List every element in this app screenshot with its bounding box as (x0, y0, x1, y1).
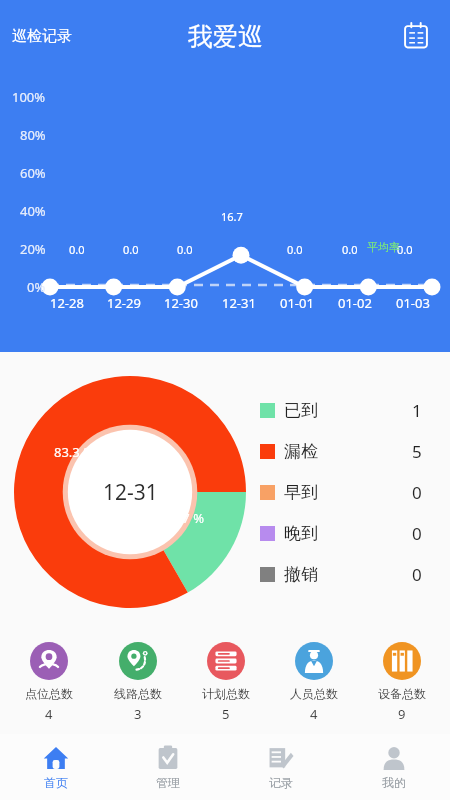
button[interactable]: 首页 (0, 734, 112, 800)
staticText: 记录 (269, 775, 293, 790)
staticText: 设备总数 (378, 686, 426, 701)
staticText: 12-30 (164, 294, 198, 312)
staticText: 0.0 (123, 242, 139, 257)
staticText: 01-01 (280, 294, 314, 312)
staticText: 0 (412, 563, 422, 586)
button[interactable]: 管理 (112, 734, 224, 800)
staticText: 83.3 % (54, 443, 94, 461)
staticText: 已到 (284, 400, 318, 421)
staticText: 12-29 (107, 294, 141, 312)
staticText: 0.0 (69, 242, 85, 257)
staticText: 5 (412, 440, 422, 463)
staticText: 01-03 (396, 294, 430, 312)
button[interactable]: 计划总数 (182, 638, 270, 727)
staticText: 40% (20, 202, 46, 220)
staticText: 60% (20, 164, 46, 182)
staticText: 撤销 (284, 564, 318, 585)
staticText: 0 (412, 481, 422, 504)
staticText: 3 (134, 705, 142, 723)
staticText: 12-31 (103, 478, 158, 507)
staticText: 晚到 (284, 523, 318, 544)
button[interactable]: 我的 (337, 734, 450, 800)
staticText: 我爱巡 (188, 21, 263, 52)
staticText: 漏检 (284, 441, 318, 462)
staticText: 点位总数 (25, 686, 73, 701)
button[interactable]: 线路总数 (93, 638, 182, 727)
staticText: 0% (27, 278, 46, 296)
button[interactable]: 漏检 (260, 440, 422, 463)
staticText: 早到 (284, 482, 318, 503)
staticText: 0.0 (397, 242, 413, 257)
button[interactable]: 早到 (260, 481, 422, 504)
staticText: 9 (398, 705, 406, 723)
staticText: 首页 (44, 775, 68, 790)
staticText: 管理 (156, 775, 180, 790)
staticText: 计划总数 (202, 686, 250, 701)
staticText: 100% (12, 88, 46, 106)
staticText: 1 (412, 399, 422, 422)
staticText: 5 (222, 705, 230, 723)
button[interactable]: 撤销 (260, 563, 422, 586)
button[interactable]: 设备总数 (358, 638, 446, 727)
staticText: 4 (45, 705, 53, 723)
staticText: 20% (20, 240, 46, 258)
button[interactable]: 巡检记录 (12, 27, 72, 46)
staticText: 12-31 (222, 294, 256, 312)
staticText: 人员总数 (290, 686, 338, 701)
staticText: 线路总数 (114, 686, 162, 701)
staticText: 80% (20, 126, 46, 144)
staticText: 0 (412, 522, 422, 545)
button[interactable]: 晚到 (260, 522, 422, 545)
staticText: 12-28 (50, 294, 84, 312)
button[interactable]: Calendar (396, 16, 436, 56)
button[interactable]: 记录 (224, 734, 337, 800)
staticText: 平均率 (367, 240, 400, 254)
staticText: 0.0 (177, 242, 193, 257)
staticText: 0.0 (342, 242, 358, 257)
button[interactable]: 点位总数 (4, 638, 93, 727)
staticText: 4 (310, 705, 318, 723)
button[interactable]: 人员总数 (270, 638, 358, 727)
staticText: 0.0 (287, 242, 303, 257)
staticText: 16.7 % (164, 509, 204, 527)
staticText: 我的 (382, 775, 406, 790)
staticText: 01-02 (338, 294, 372, 312)
button[interactable]: 已到 (260, 399, 422, 422)
staticText: 16.7 (221, 209, 243, 224)
